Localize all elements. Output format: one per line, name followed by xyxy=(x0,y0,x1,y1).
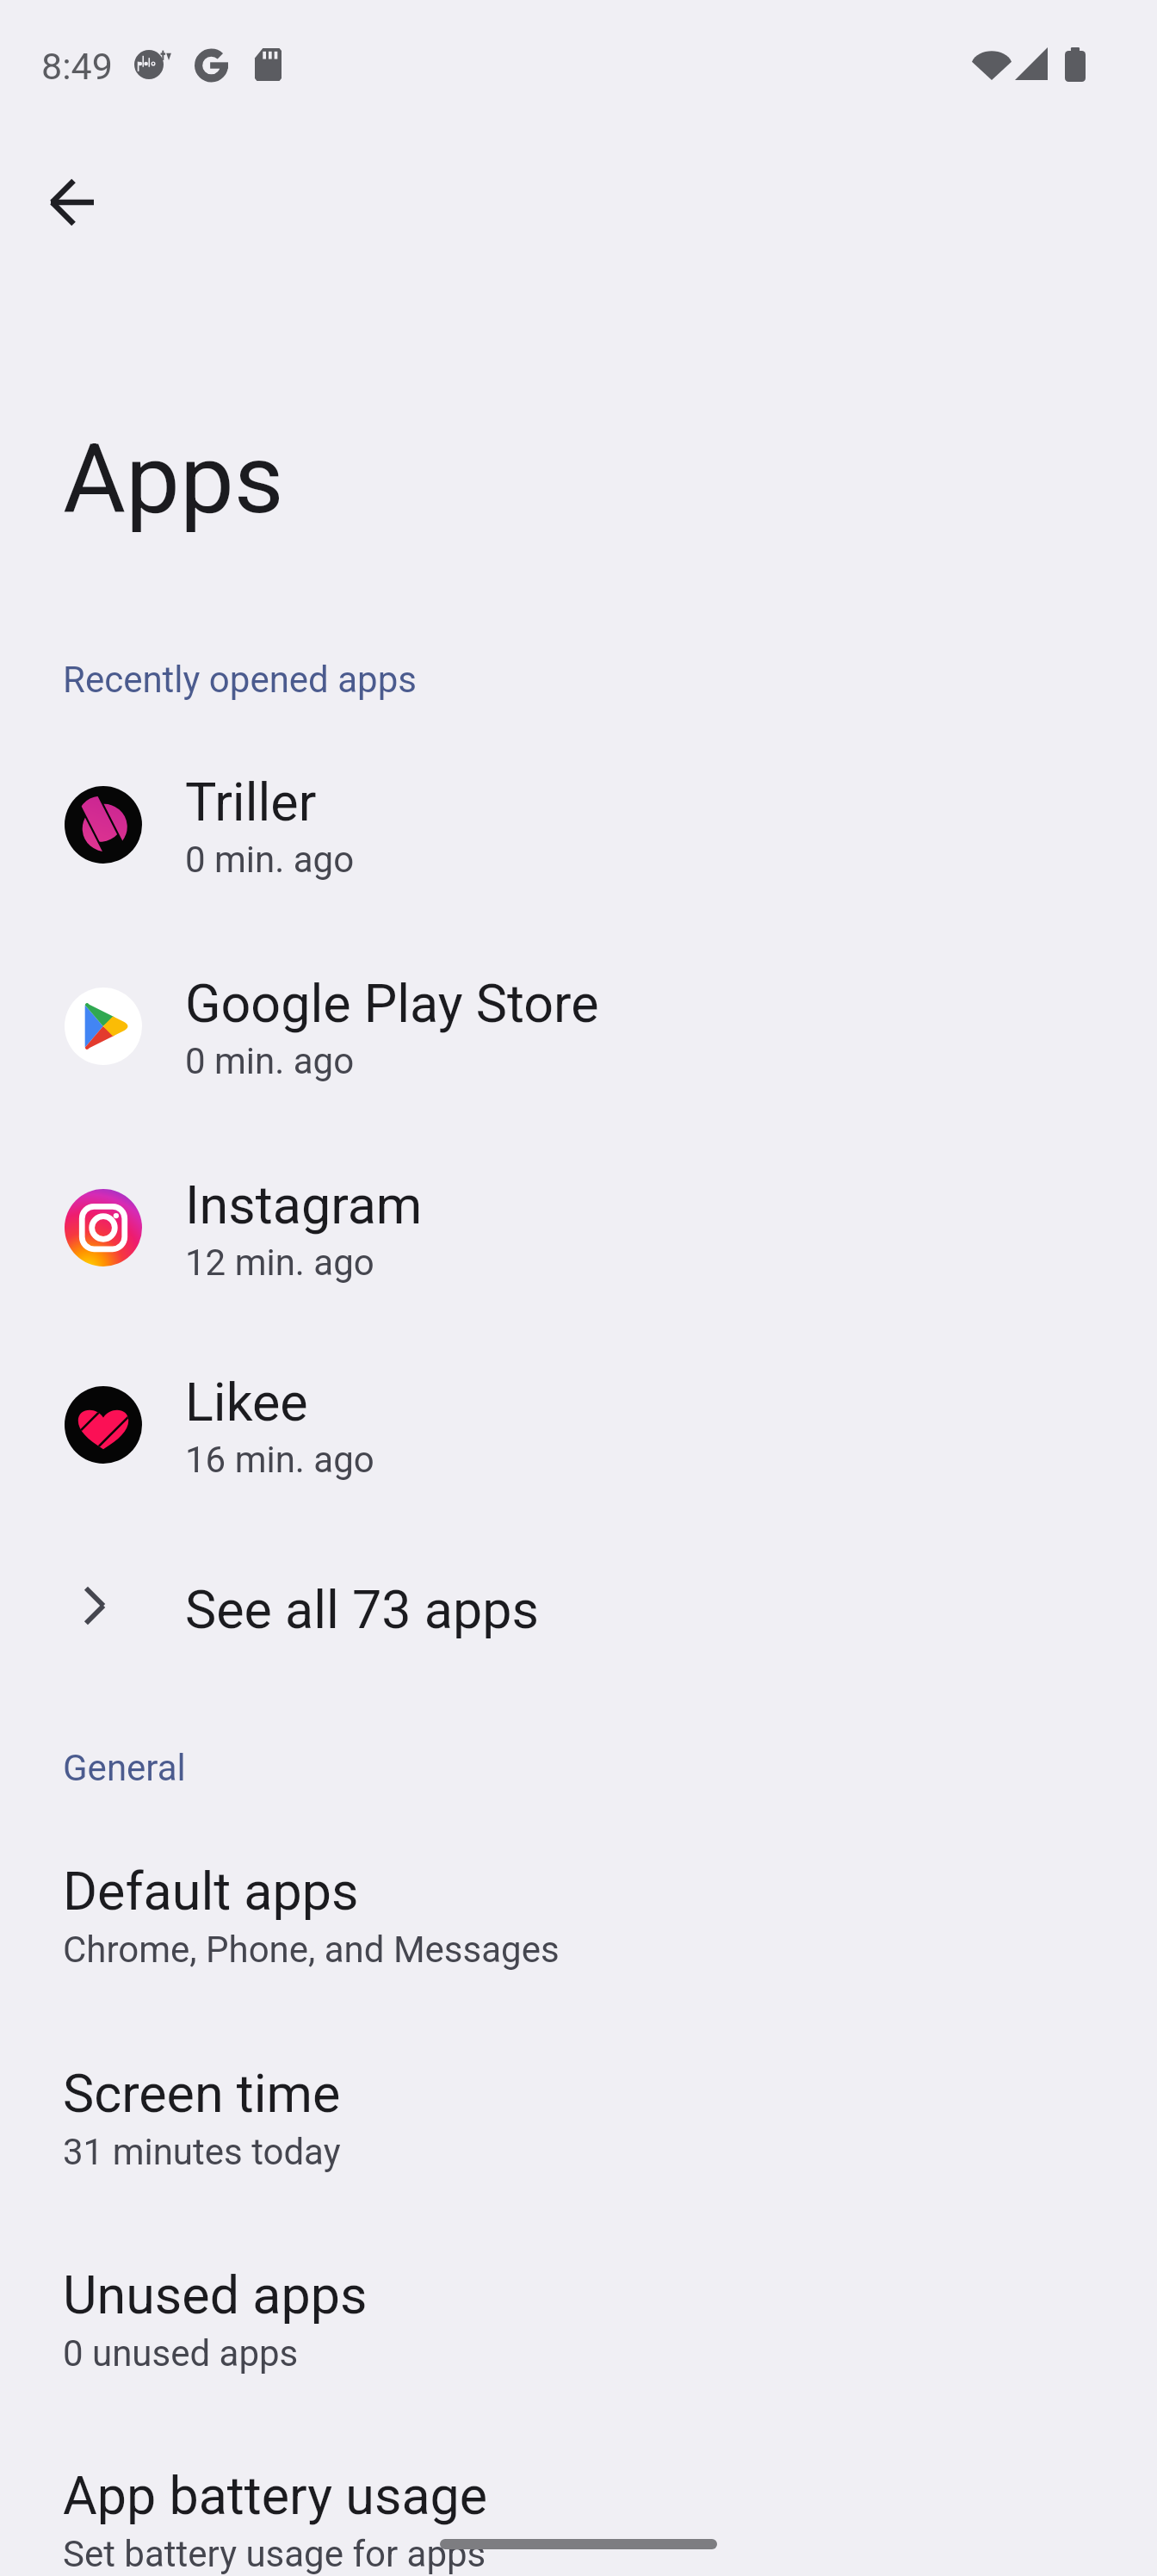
staticText: See all 73 apps xyxy=(185,1579,539,1640)
button[interactable]: Screen time xyxy=(0,2011,1157,2179)
staticText: Recently opened apps xyxy=(63,659,417,701)
button[interactable]: Unused apps xyxy=(0,2213,1157,2381)
staticText: Instagram xyxy=(185,1174,423,1235)
staticText: 31 minutes today xyxy=(63,2131,341,2173)
button[interactable]: App battery usage xyxy=(0,2413,1157,2576)
staticText: 8:49 xyxy=(41,45,113,88)
staticText: Likee xyxy=(185,1372,308,1433)
staticText: Google Play Store xyxy=(185,973,599,1034)
staticText: 0 unused apps xyxy=(63,2332,299,2375)
button[interactable]: Triller xyxy=(0,725,1157,925)
staticText: 16 min. ago xyxy=(185,1439,374,1481)
staticText: Unused apps xyxy=(63,2264,368,2325)
staticText: Screen time xyxy=(63,2063,341,2124)
staticText: App battery usage xyxy=(63,2465,488,2526)
staticText: General xyxy=(63,1747,186,1789)
staticText: Default apps xyxy=(63,1861,359,1922)
button[interactable]: Google Play Store xyxy=(0,926,1157,1126)
staticText: 0 min. ago xyxy=(185,1040,355,1082)
staticText: Triller xyxy=(185,771,317,833)
button[interactable]: Instagram xyxy=(0,1128,1157,1328)
button[interactable]: Likee xyxy=(0,1325,1157,1525)
staticText: 0 min. ago xyxy=(185,839,355,881)
button[interactable]: See all 73 apps xyxy=(0,1526,1157,1689)
staticText: 12 min. ago xyxy=(185,1242,374,1284)
staticText: Apps xyxy=(63,423,284,536)
staticText: Set battery usage for apps xyxy=(63,2533,486,2575)
button[interactable]: Default apps xyxy=(0,1809,1157,1977)
button[interactable]: Back xyxy=(12,142,133,263)
staticText: Chrome, Phone, and Messages xyxy=(63,1929,560,1971)
